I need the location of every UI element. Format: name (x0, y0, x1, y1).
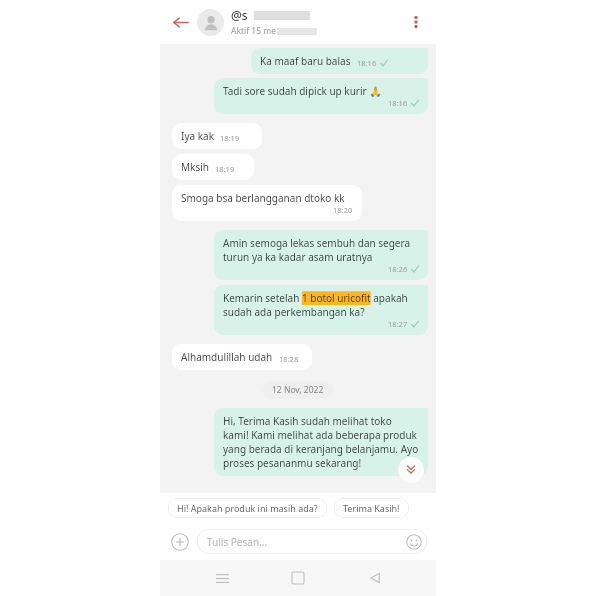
staticText: Terima Kasih! (343, 502, 400, 514)
button[interactable]: Mksih (172, 154, 254, 180)
button[interactable]: Smoga bsa berlangganan dtoko kk (172, 185, 362, 221)
button[interactable]: Hi! Apakah produk ini masih ada? (168, 498, 327, 518)
staticText: 18:20 (333, 205, 353, 215)
button[interactable]: Alhamdulillah udah (172, 344, 312, 370)
staticText: Iya kak (181, 129, 214, 143)
button[interactable]: Hi, Terima Kasih sudah melihat toko kami… (214, 408, 428, 476)
staticText: Hi, Terima Kasih sudah melihat toko kami… (223, 414, 419, 470)
staticText: Kemarin setelah 1 botol uricofit apakah … (223, 291, 419, 319)
button[interactable]: Kemarin setelah 1 botol uricofit apakah … (214, 285, 428, 335)
staticText: Mksih (181, 160, 209, 174)
staticText: 18:26 (388, 264, 408, 274)
button[interactable]: More options (404, 10, 428, 34)
staticText: Tulis Pesan... (207, 535, 406, 549)
button[interactable]: Back (360, 563, 390, 593)
staticText: Aktif 15 me (231, 25, 277, 37)
staticText: 18:16 (388, 98, 408, 108)
button[interactable]: Tadi sore sudah dipick up kurir 🙏 (214, 78, 428, 114)
staticText: 18:19 (220, 133, 240, 143)
staticText: Hi! Apakah produk ini masih ada? (177, 502, 318, 514)
staticText: @s (231, 7, 248, 23)
staticText: 18:16 (357, 58, 377, 68)
staticText: 18:28 (279, 354, 299, 364)
staticText: 18:19 (215, 164, 235, 174)
staticText: Tadi sore sudah dipick up kurir 🙏 (223, 84, 382, 98)
staticText: Ka maaf baru balas (260, 54, 351, 68)
button[interactable]: Terima Kasih! (334, 498, 409, 518)
button[interactable]: Amin semoga lekas sembuh dan segera turu… (214, 230, 428, 280)
button[interactable]: Tulis Pesan... (197, 529, 427, 554)
staticText: 12 Nov, 2022 (272, 384, 324, 396)
button[interactable]: Add attachment (169, 531, 191, 553)
button[interactable]: Home (283, 563, 313, 593)
button[interactable]: Scroll to bottom (398, 457, 424, 483)
button[interactable]: Profile photo (197, 9, 224, 36)
button[interactable]: Back (168, 10, 192, 34)
button[interactable]: Iya kak (172, 123, 262, 149)
staticText: Smoga bsa berlangganan dtoko kk (181, 191, 345, 205)
button[interactable]: Recent apps (207, 563, 237, 593)
staticText: Amin semoga lekas sembuh dan segera turu… (223, 236, 419, 264)
button[interactable]: Ka maaf baru balas (251, 48, 428, 74)
staticText: Alhamdulillah udah (181, 350, 273, 364)
button[interactable]: Emoji (406, 534, 422, 550)
staticText: 18:27 (388, 319, 408, 329)
button[interactable]: @s (231, 7, 404, 37)
